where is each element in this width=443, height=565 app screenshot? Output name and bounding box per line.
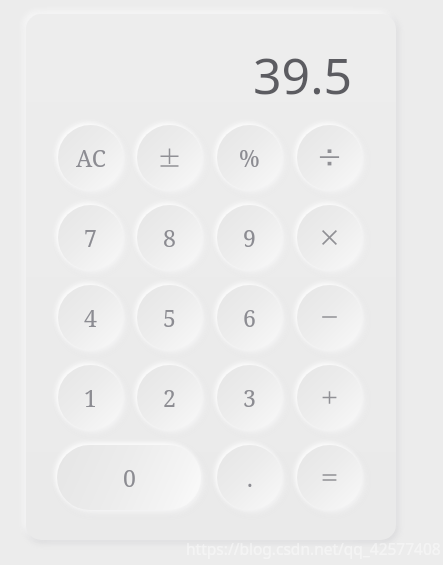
button[interactable]: 3 bbox=[217, 365, 282, 430]
button[interactable]: 7 bbox=[58, 205, 123, 270]
button[interactable]: Equals bbox=[297, 445, 362, 510]
button[interactable]: % bbox=[217, 125, 282, 190]
staticText: https://blog.csdn.net/qq_42577408 bbox=[186, 538, 441, 559]
button[interactable]: Divide bbox=[297, 125, 362, 190]
staticText: 39.5 bbox=[253, 41, 353, 109]
button[interactable]: 5 bbox=[137, 285, 202, 350]
staticText: AC bbox=[76, 142, 106, 173]
staticText: 0 bbox=[123, 462, 136, 493]
button[interactable]: AC bbox=[58, 125, 123, 190]
button[interactable]: . bbox=[217, 445, 282, 510]
staticText: 9 bbox=[243, 222, 256, 253]
button[interactable]: Plus bbox=[297, 365, 362, 430]
button[interactable]: 0 bbox=[57, 445, 201, 510]
button[interactable]: 1 bbox=[58, 365, 123, 430]
staticText: 1 bbox=[84, 382, 97, 413]
button[interactable]: 2 bbox=[137, 365, 202, 430]
staticText: % bbox=[239, 142, 260, 173]
staticText: 4 bbox=[84, 302, 97, 333]
button[interactable]: 6 bbox=[217, 285, 282, 350]
staticText: 8 bbox=[163, 222, 176, 253]
staticText: 5 bbox=[163, 302, 176, 333]
button[interactable]: 8 bbox=[137, 205, 202, 270]
staticText: . bbox=[247, 462, 253, 493]
staticText: 7 bbox=[84, 222, 97, 253]
staticText: 2 bbox=[163, 382, 176, 413]
button[interactable]: Plus minus bbox=[137, 125, 202, 190]
button[interactable]: 4 bbox=[58, 285, 123, 350]
button[interactable]: Minus bbox=[297, 285, 362, 350]
staticText: 6 bbox=[243, 302, 256, 333]
staticText: 3 bbox=[243, 382, 256, 413]
button[interactable]: Multiply bbox=[297, 205, 362, 270]
button[interactable]: 9 bbox=[217, 205, 282, 270]
